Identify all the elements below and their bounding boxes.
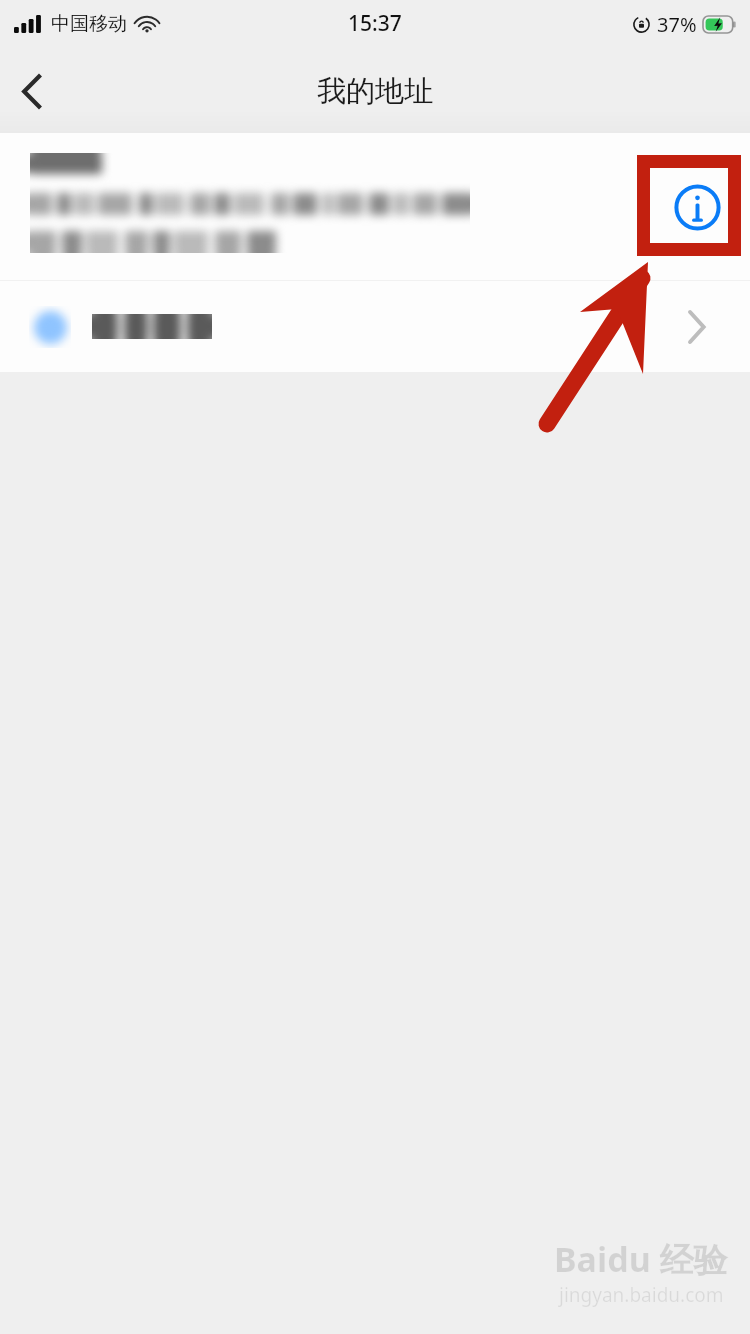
staticText: 37%	[657, 11, 697, 38]
button[interactable]: Address info	[653, 163, 741, 251]
button[interactable]: Address info	[0, 133, 750, 280]
staticText: 我的地址	[317, 73, 433, 110]
staticText: Baidu 经验	[554, 1236, 728, 1282]
staticText: 15:37	[348, 9, 402, 38]
staticText: jingyan.baidu.com	[559, 1282, 724, 1308]
staticText: 中国移动	[51, 12, 127, 36]
button[interactable]	[0, 281, 750, 372]
button[interactable]: Back	[0, 59, 64, 123]
